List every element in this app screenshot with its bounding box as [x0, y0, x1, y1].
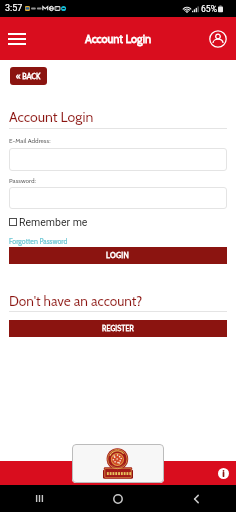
button[interactable]: LOGIN: [9, 247, 227, 264]
staticText: 3:57: [5, 3, 23, 14]
staticText: « BACK: [16, 72, 41, 81]
staticText: 65%: [201, 4, 217, 14]
button[interactable]: Account: [200, 17, 236, 60]
button[interactable]: Remember me: [9, 216, 88, 227]
button[interactable]: Back: [157, 485, 236, 512]
button[interactable]: Pizzaria Highworth: [72, 444, 164, 483]
button[interactable]: [9, 187, 227, 209]
staticText: REGISTER: [102, 324, 135, 333]
staticText: E-Mail Address:: [9, 137, 51, 145]
button[interactable]: « BACK: [10, 67, 47, 85]
button[interactable]: Home: [78, 485, 157, 512]
button[interactable]: Recent apps: [0, 485, 78, 512]
button[interactable]: [9, 148, 227, 171]
button[interactable]: Menu: [0, 17, 34, 60]
staticText: Account Login: [85, 32, 152, 45]
staticText: LOGIN: [106, 251, 130, 260]
button[interactable]: Information: [217, 467, 229, 479]
staticText: Don't have an account?: [9, 293, 143, 310]
button[interactable]: Forgotten Password: [9, 237, 68, 246]
staticText: Remember me: [19, 216, 88, 227]
button[interactable]: REGISTER: [9, 320, 227, 337]
staticText: Account Login: [9, 108, 94, 125]
staticText: Password:: [9, 177, 36, 185]
